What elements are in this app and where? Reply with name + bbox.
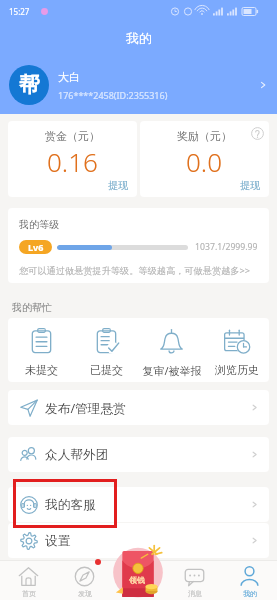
staticText: 众人帮外团	[45, 447, 109, 463]
button[interactable]: 领钱	[111, 544, 165, 598]
staticText: 您可以通过做悬赏提升等级。等级越高，可做悬赏越多>>	[19, 264, 251, 277]
staticText: 领钱	[129, 575, 145, 585]
button[interactable]: 帮	[0, 65, 277, 105]
staticText: 我的	[243, 589, 257, 598]
staticText: 复审/被举报	[142, 363, 202, 378]
staticText: 首页	[22, 589, 36, 598]
staticText: 我的等级	[19, 218, 59, 231]
staticText: 帮	[19, 72, 40, 98]
button[interactable]: 发现	[56, 560, 112, 600]
button[interactable]: 赏金（元）	[8, 121, 137, 197]
button[interactable]: 众人帮外团	[8, 437, 269, 472]
button[interactable]: 帮助	[251, 127, 264, 140]
button[interactable]: 未提交	[8, 318, 74, 382]
staticText: 发现	[78, 589, 92, 598]
button[interactable]: 提现	[240, 179, 269, 197]
button[interactable]: 我的	[222, 560, 277, 600]
staticText: 我的	[126, 30, 152, 46]
staticText: 176****2458(ID:2355316)	[58, 89, 168, 101]
staticText: 0.16	[47, 144, 98, 179]
staticText: 我的客服	[45, 497, 96, 513]
button[interactable]: 复审/被举报	[139, 318, 204, 382]
button[interactable]: 我的等级	[8, 208, 269, 283]
button[interactable]: 奖励（元）	[140, 121, 269, 197]
button[interactable]: 首页	[0, 560, 56, 600]
staticText: 1037.1/2999.99	[195, 241, 258, 253]
button[interactable]: 已提交	[74, 318, 139, 382]
staticText: 发布/管理悬赏	[45, 399, 126, 416]
staticText: 大白	[58, 70, 80, 84]
staticText: 设置	[45, 533, 71, 549]
button[interactable]: 我的客服	[8, 487, 269, 522]
staticText: 已提交	[90, 363, 123, 377]
button[interactable]: 提现	[108, 179, 137, 197]
staticText: 消息	[188, 589, 202, 598]
button[interactable]: 设置	[8, 523, 269, 558]
staticText: 浏览历史	[215, 363, 259, 377]
staticText: 15:27	[9, 6, 30, 17]
button[interactable]: 浏览历史	[204, 318, 269, 382]
staticText: 0.0	[186, 144, 223, 179]
staticText: 赏金（元）	[45, 129, 100, 143]
button[interactable]: 领钱	[112, 560, 167, 600]
button[interactable]: 消息	[167, 560, 222, 600]
staticText: Lv6	[28, 241, 44, 253]
staticText: 未提交	[25, 363, 58, 377]
button[interactable]: 发布/管理悬赏	[8, 390, 269, 425]
staticText: 我的帮忙	[12, 301, 52, 314]
staticText: 奖励（元）	[177, 129, 232, 143]
